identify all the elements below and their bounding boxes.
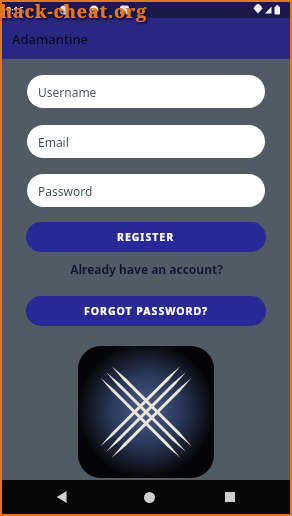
button[interactable]: [78, 346, 214, 478]
button[interactable]: [133, 480, 165, 514]
staticText: FORGOT PASSWORD?: [84, 304, 209, 318]
staticText: Username: [38, 84, 97, 100]
button[interactable]: [214, 480, 246, 514]
button[interactable]: REGISTER: [26, 222, 266, 252]
button[interactable]: FORGOT PASSWORD?: [26, 296, 266, 326]
staticText: Adamantine: [12, 30, 89, 48]
staticText: hack-cheat.org: [0, 0, 148, 24]
staticText: Email: [38, 134, 69, 150]
button[interactable]: Username: [27, 75, 265, 108]
staticText: Password: [38, 183, 93, 199]
button[interactable]: Password: [27, 174, 265, 207]
button[interactable]: Email: [27, 125, 265, 158]
staticText: REGISTER: [117, 230, 175, 244]
button[interactable]: Already have an account?: [70, 261, 223, 277]
button[interactable]: [46, 480, 78, 514]
staticText: 9:16: [6, 4, 24, 16]
